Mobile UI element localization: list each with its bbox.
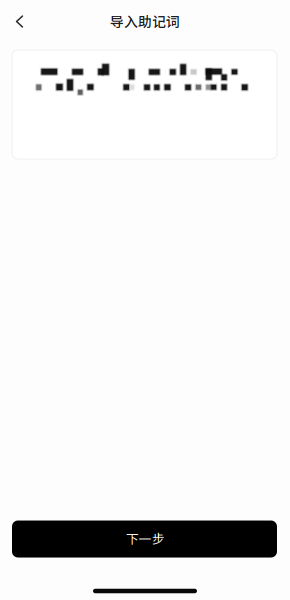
button[interactable]: 下一步: [12, 520, 277, 557]
staticText: 下一步: [126, 529, 165, 547]
staticText: 导入助记词: [110, 11, 180, 31]
button[interactable]: Back: [0, 0, 42, 42]
